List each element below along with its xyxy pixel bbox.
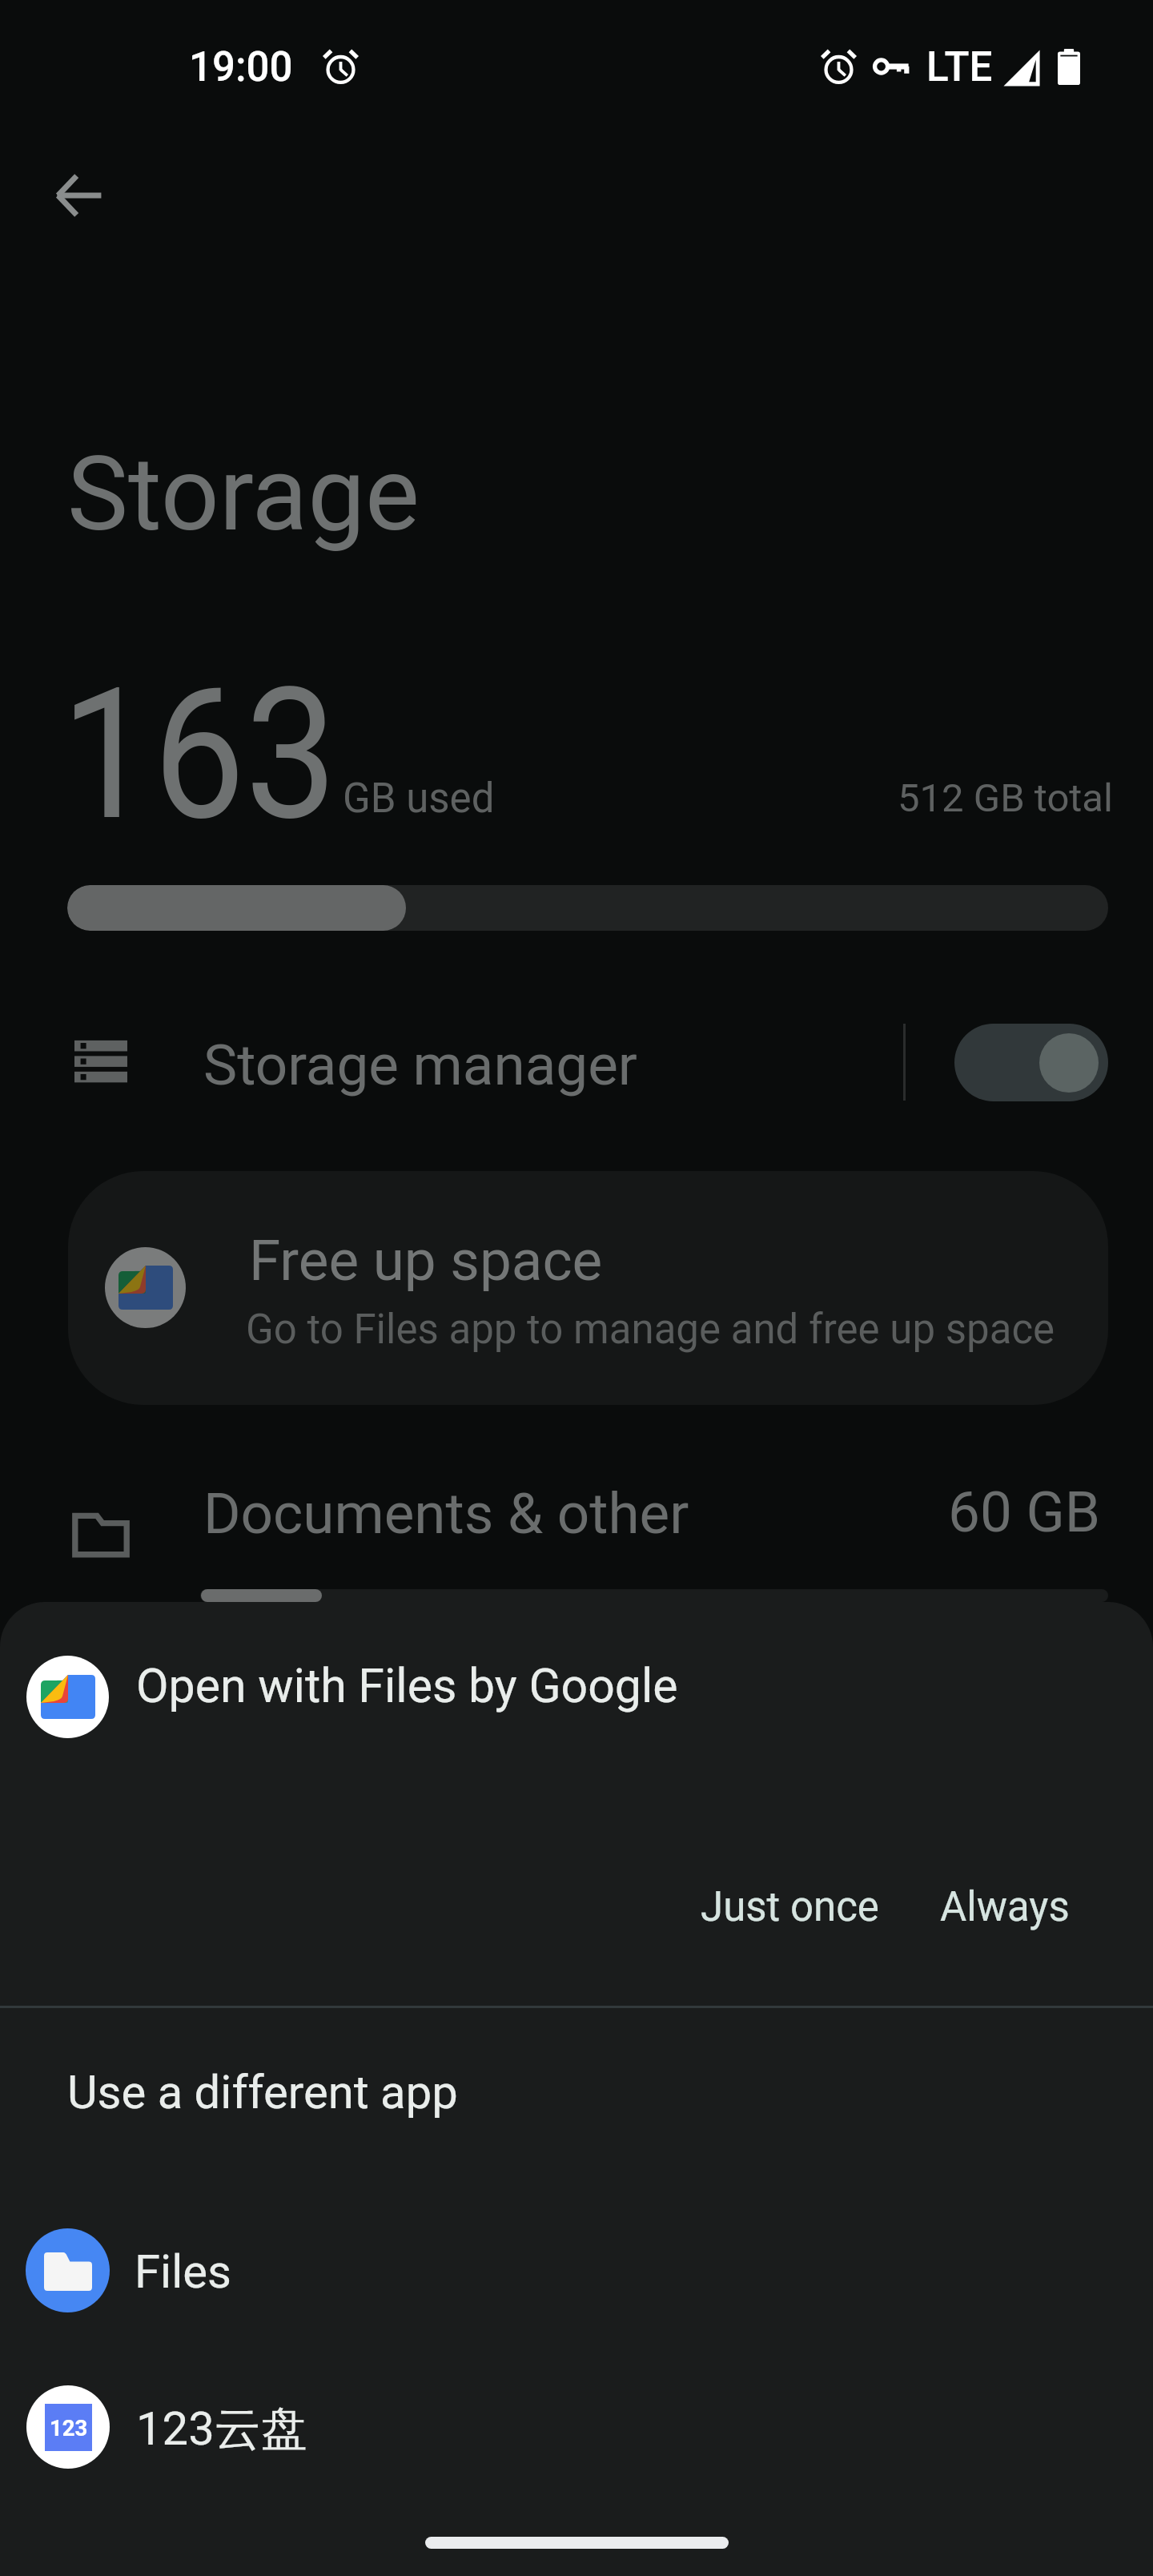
staticText: Just once: [701, 1883, 879, 1931]
button[interactable]: Storage manager: [0, 1002, 1153, 1122]
staticText: Documents & other: [203, 1480, 689, 1547]
staticText: 123云盘: [136, 2400, 307, 2458]
staticText: 512 GB total: [898, 775, 1113, 821]
staticText: GB used: [343, 775, 495, 823]
staticText: Files: [135, 2244, 231, 2299]
button[interactable]: 123: [0, 2366, 1153, 2486]
button[interactable]: Documents & other: [0, 1451, 1153, 1572]
staticText: Always: [940, 1883, 1070, 1931]
button[interactable]: Free up space: [68, 1171, 1108, 1405]
button[interactable]: Always: [906, 1860, 1103, 1954]
staticText: Use a different app: [67, 2065, 458, 2119]
button[interactable]: Files: [0, 2209, 1153, 2329]
staticText: 19:00: [189, 43, 293, 91]
staticText: Storage manager: [203, 1032, 637, 1098]
button[interactable]: Just once: [667, 1860, 913, 1954]
button[interactable]: Storage manager: [954, 1024, 1108, 1101]
staticText: 163: [61, 649, 338, 861]
staticText: Storage: [67, 434, 420, 554]
staticText: Open with Files by Google: [136, 1658, 678, 1713]
staticText: 60 GB: [948, 1479, 1101, 1545]
staticText: Free up space: [249, 1227, 603, 1294]
staticText: Go to Files app to manage and free up sp…: [246, 1306, 1055, 1354]
staticText: LTE: [926, 43, 993, 91]
button[interactable]: Back: [22, 139, 135, 252]
staticText: 123: [50, 2415, 88, 2441]
